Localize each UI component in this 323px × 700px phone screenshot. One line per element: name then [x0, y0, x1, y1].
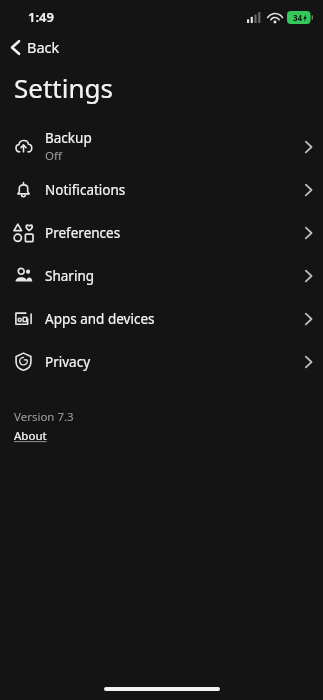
staticText: Backup	[45, 129, 92, 147]
staticText: Preferences	[45, 224, 121, 242]
button[interactable]: Backup	[0, 125, 323, 168]
staticText: Back	[27, 37, 60, 57]
button[interactable]: Privacy	[0, 340, 323, 383]
staticText: Sharing	[45, 267, 95, 285]
staticText: About	[14, 428, 47, 444]
staticText: Notifications	[45, 181, 126, 199]
button[interactable]: Preferences	[0, 211, 323, 254]
staticText: Privacy	[45, 353, 91, 371]
staticText: Off	[45, 148, 62, 164]
staticText: Version 7.3	[14, 409, 74, 425]
button[interactable]: Sharing	[0, 254, 323, 297]
staticText: 1:49	[28, 8, 54, 26]
button[interactable]: About	[14, 428, 47, 444]
button[interactable]: Back	[0, 34, 323, 60]
button[interactable]: Notifications	[0, 168, 323, 211]
button[interactable]: Apps and devices	[0, 297, 323, 340]
staticText: Settings	[14, 70, 113, 105]
staticText: Apps and devices	[45, 310, 155, 328]
staticText: 34	[293, 12, 303, 23]
